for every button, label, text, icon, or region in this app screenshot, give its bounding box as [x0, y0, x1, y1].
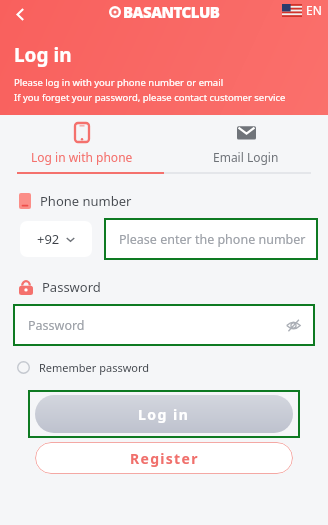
button[interactable]: Please enter the phone number: [106, 220, 316, 258]
staticText: Register: [130, 449, 199, 468]
staticText: BASANTCLUB: [123, 2, 220, 22]
staticText: Email Login: [213, 149, 279, 165]
button[interactable]: Email Login: [164, 115, 328, 172]
staticText: Phone number: [40, 192, 132, 210]
staticText: +92: [37, 230, 60, 248]
button[interactable]: Back: [7, 1, 33, 27]
staticText: Password: [42, 278, 101, 296]
staticText: Please enter the phone number: [119, 231, 306, 248]
button[interactable]: Log in with phone: [0, 115, 164, 172]
staticText: If you forget your password, please cont…: [14, 91, 286, 104]
button[interactable]: Register: [35, 442, 293, 474]
button[interactable]: +92: [20, 221, 92, 257]
staticText: Log in: [14, 42, 72, 68]
staticText: Please log in with your phone number or …: [14, 76, 224, 89]
button[interactable]: Password: [15, 306, 313, 344]
staticText: Remember password: [39, 360, 150, 375]
staticText: Password: [28, 317, 85, 334]
staticText: Log in: [138, 405, 190, 424]
button[interactable]: Show password: [283, 315, 303, 335]
button[interactable]: EN: [282, 2, 322, 18]
button[interactable]: Log in: [35, 395, 293, 433]
staticText: EN: [306, 2, 322, 18]
button[interactable]: Remember password: [17, 354, 328, 380]
staticText: Log in with phone: [31, 149, 133, 165]
